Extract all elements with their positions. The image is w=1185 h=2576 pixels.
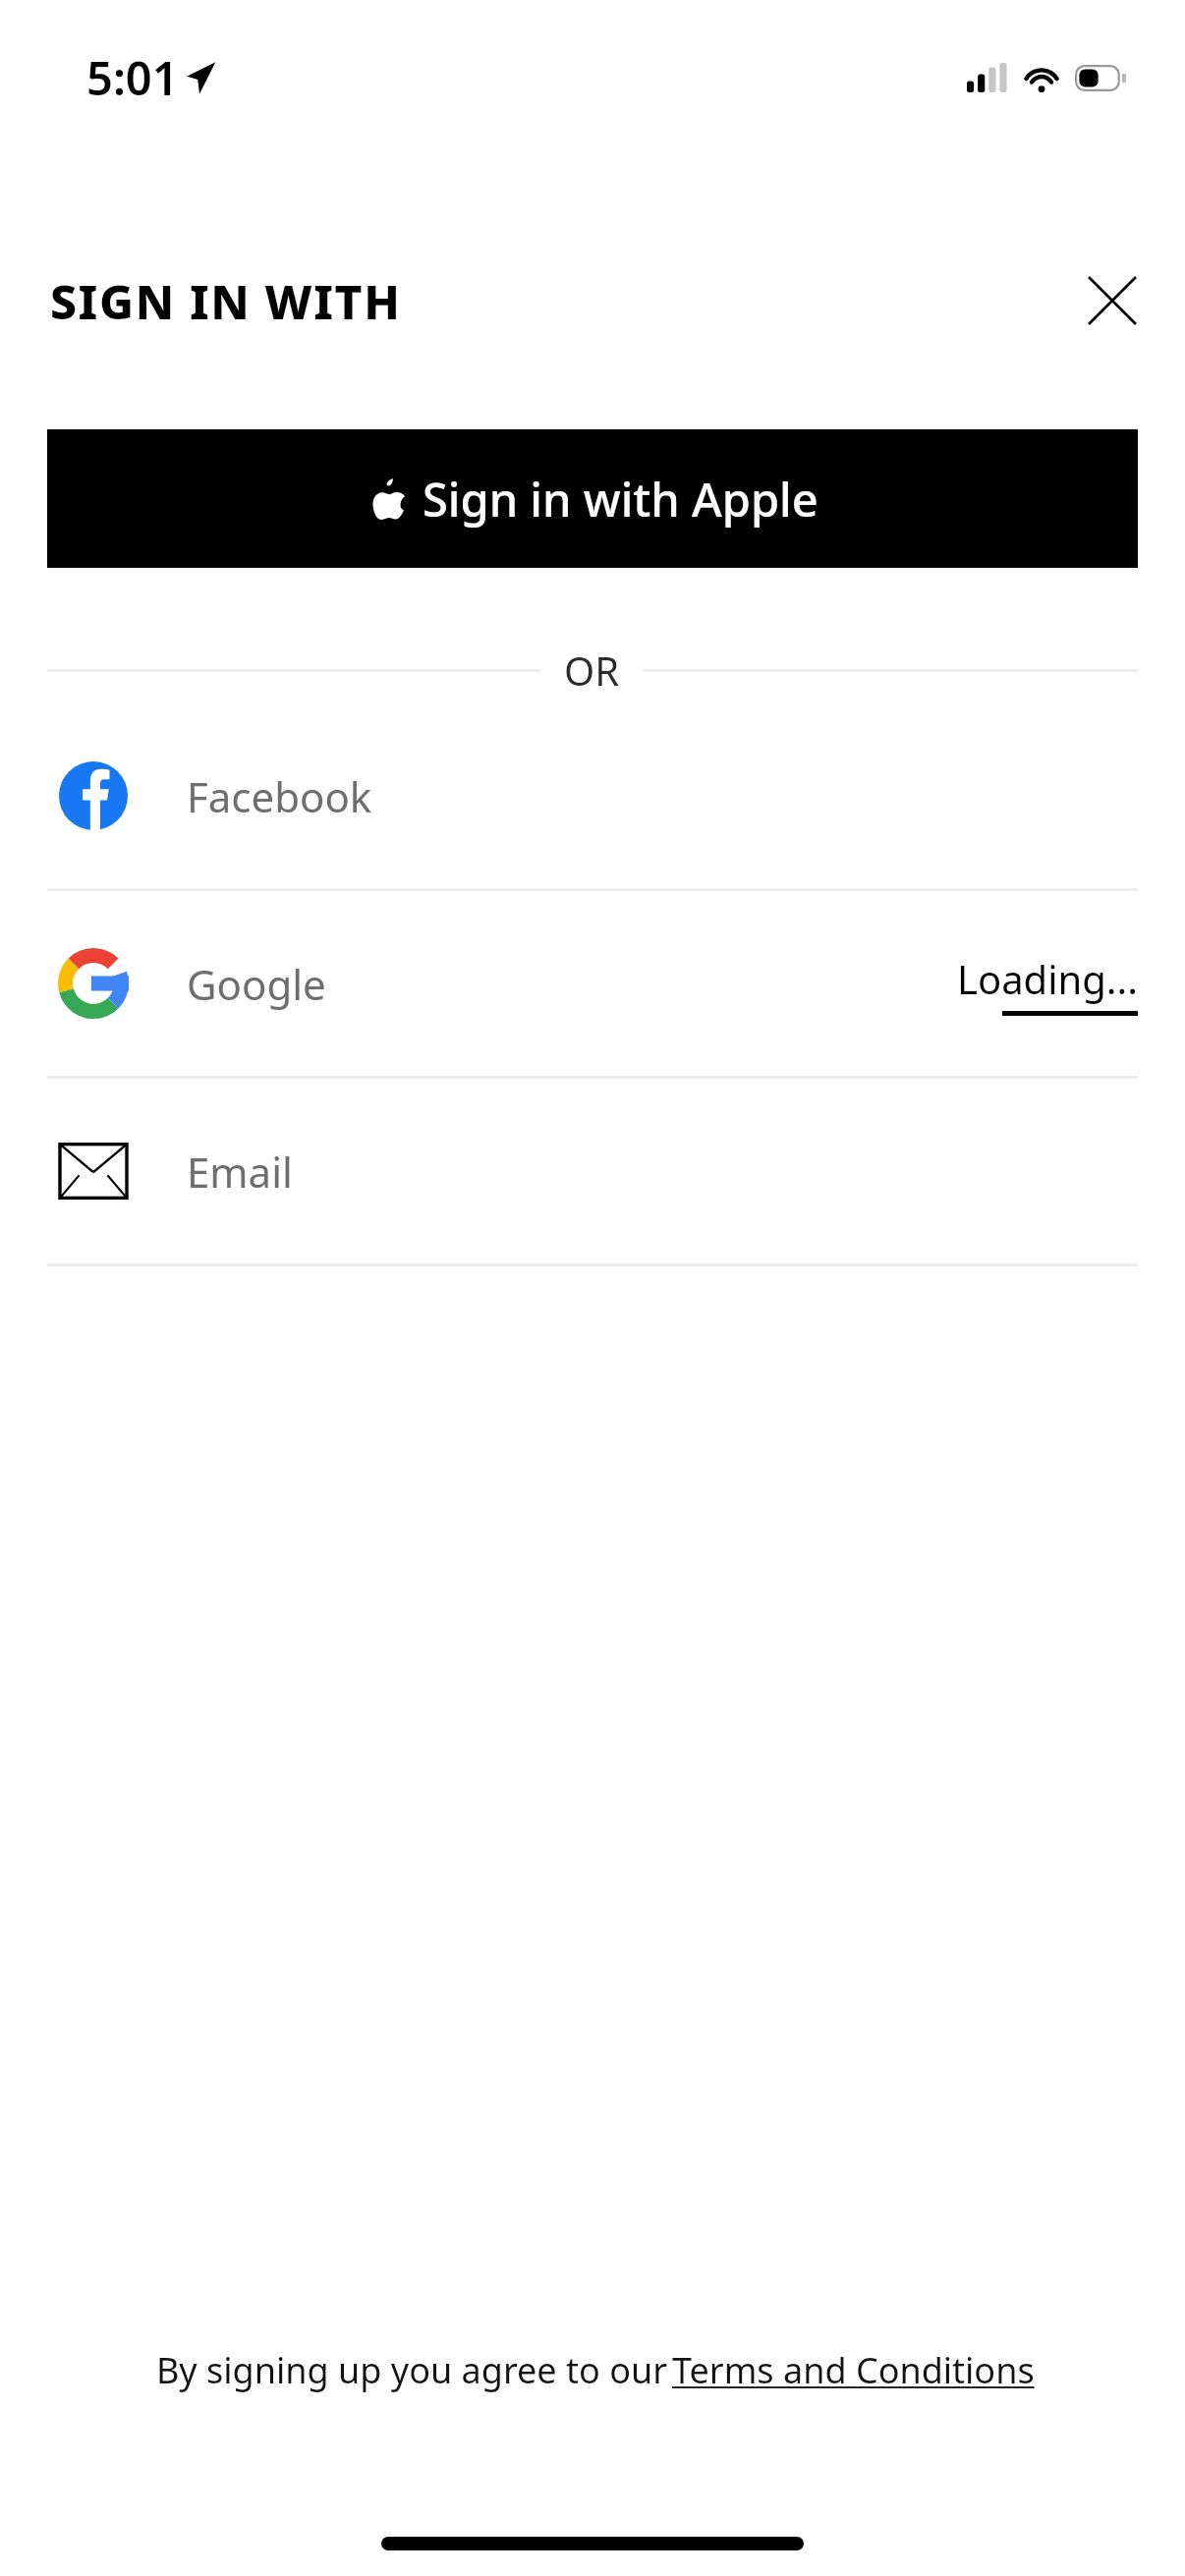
button[interactable]: Terms and Conditions: [672, 2346, 1035, 2394]
staticText: OR: [564, 644, 620, 697]
staticText: Sign in with Apple: [423, 468, 818, 531]
button[interactable]: Close: [1075, 263, 1150, 338]
staticText: 5:01: [86, 46, 179, 109]
button[interactable]: Email: [0, 1079, 1185, 1263]
staticText: Terms and Conditions: [672, 2346, 1035, 2394]
button[interactable]: Sign in with Apple: [47, 429, 1138, 568]
staticText: Facebook: [187, 768, 372, 824]
button[interactable]: Google: [0, 891, 1185, 1076]
button[interactable]: Facebook: [0, 703, 1185, 888]
staticText: Loading...: [957, 952, 1138, 1005]
staticText: Google: [187, 956, 326, 1012]
staticText: By signing up you agree to our: [151, 2346, 672, 2394]
staticText: SIGN IN WITH: [50, 269, 402, 333]
staticText: Email: [187, 1144, 293, 1200]
